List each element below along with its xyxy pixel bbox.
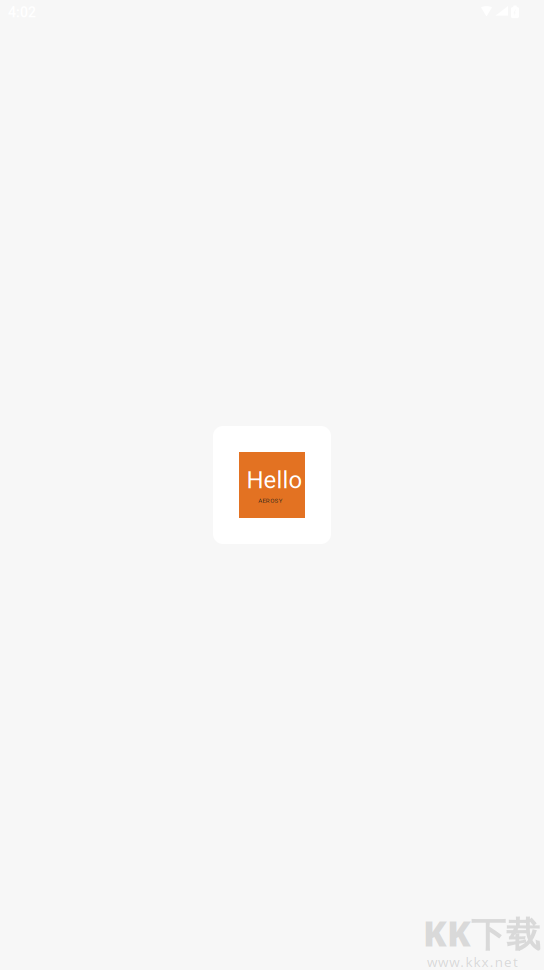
button[interactable]: Hello AEROSY app logo (213, 426, 331, 544)
staticText: KK下载 (423, 910, 541, 956)
staticText: AEROSY (258, 497, 283, 504)
staticText: www.kkx.net (427, 953, 518, 970)
staticText: Hello (246, 466, 302, 494)
